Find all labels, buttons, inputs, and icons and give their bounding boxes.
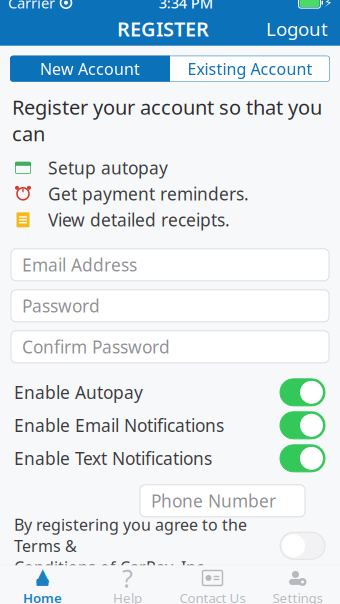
button[interactable]: ▲: [0, 566, 85, 604]
staticText: View detailed receipts.: [48, 208, 230, 231]
staticText: Enable Email Notifications: [14, 414, 224, 437]
button[interactable]: Enable Email Notifications: [0, 409, 340, 442]
staticText: Enable Text Notifications: [14, 447, 212, 470]
staticText: Get payment reminders.: [48, 182, 249, 205]
button[interactable]: Contact Us: [170, 566, 255, 604]
button[interactable]: ?: [85, 566, 170, 604]
button[interactable]: Enable Autopay: [0, 376, 340, 409]
staticText: Confirm Password: [22, 335, 170, 358]
button[interactable]: Enable Text Notifications: [0, 442, 340, 475]
button[interactable]: By registering you agree to the Terms & …: [0, 527, 340, 565]
staticText: Phone Number: [151, 489, 276, 512]
staticText: Settings: [272, 589, 322, 604]
button[interactable]: Logout: [256, 10, 338, 47]
staticText: Help: [113, 589, 142, 604]
staticText: Home: [23, 589, 62, 604]
staticText: Existing Account: [187, 58, 312, 79]
staticText: Register your account so that you can: [12, 94, 322, 147]
button[interactable]: Settings: [255, 566, 340, 604]
staticText: Enable Autopay: [14, 381, 143, 404]
staticText: REGISTER: [117, 15, 209, 42]
staticText: ?: [122, 561, 133, 595]
staticText: Contact Us: [179, 589, 245, 604]
staticText: Email Address: [22, 253, 137, 276]
staticText: By registering you agree to the Terms & …: [14, 514, 247, 578]
staticText: Carrier: [8, 0, 55, 12]
button[interactable]: Existing Account: [170, 56, 330, 82]
staticText: Setup autopay: [48, 156, 168, 179]
staticText: New Account: [40, 58, 140, 79]
button[interactable]: New Account: [10, 56, 170, 82]
staticText: Logout: [266, 16, 328, 41]
staticText: 3:34 PM: [159, 0, 213, 12]
staticText: ▲: [36, 565, 49, 584]
staticText: ⚡︎: [324, 0, 332, 9]
staticText: Password: [22, 294, 100, 317]
